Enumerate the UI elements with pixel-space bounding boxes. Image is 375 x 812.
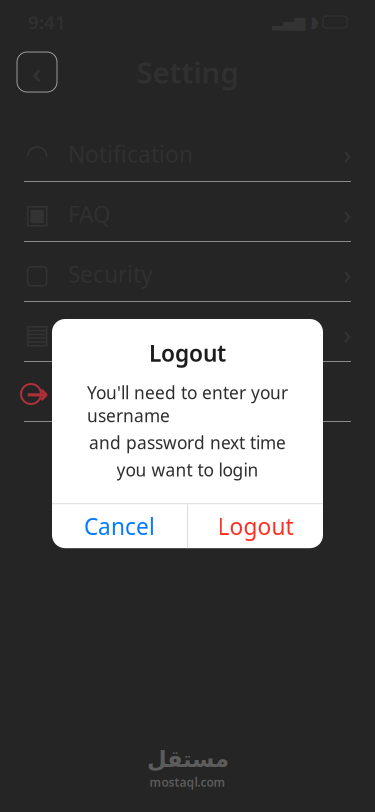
staticText: ‹: [32, 52, 42, 91]
button[interactable]: Cancel: [52, 504, 187, 548]
staticText: ›: [343, 136, 351, 172]
staticText: FAQ: [68, 199, 111, 229]
staticText: You'll need to enter your username: [87, 381, 288, 427]
staticText: you want to login: [116, 458, 258, 481]
staticText: and password next time: [89, 431, 286, 454]
staticText: ›: [343, 316, 351, 352]
staticText: ▢: [24, 259, 49, 289]
button[interactable]: Back: [17, 52, 57, 92]
staticText: Account: [68, 319, 154, 349]
staticText: Notification: [68, 139, 193, 169]
staticText: Setting: [136, 52, 238, 91]
staticText: مستقل: [146, 746, 228, 772]
staticText: ▣: [24, 199, 49, 229]
staticText: Security: [68, 259, 153, 289]
staticText: Logout: [217, 511, 293, 541]
staticText: Cancel: [84, 511, 155, 541]
staticText: ▂▄▆: [272, 14, 305, 30]
staticText: mostaql.com: [149, 774, 225, 790]
staticText: Logout: [149, 338, 226, 368]
staticText: ◗: [310, 13, 318, 31]
staticText: 9:41: [28, 10, 66, 34]
staticText: →: [26, 379, 48, 409]
button[interactable]: Logout: [188, 504, 323, 548]
staticText: Logout: [68, 379, 144, 409]
staticText: ›: [343, 196, 351, 232]
staticText: ◠: [25, 139, 48, 169]
staticText: ›: [343, 256, 351, 292]
staticText: ▤: [24, 319, 49, 349]
